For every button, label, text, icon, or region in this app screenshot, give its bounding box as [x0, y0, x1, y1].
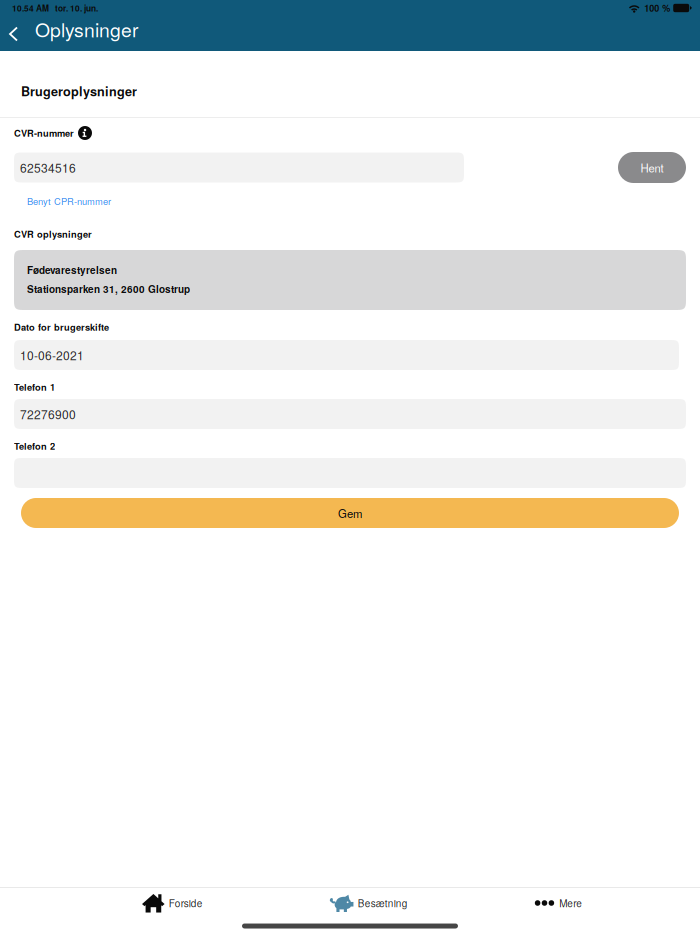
staticText: Forside: [169, 896, 203, 910]
staticText: 10.54 AM: [12, 2, 49, 14]
staticText: 62534516: [20, 159, 76, 176]
button[interactable]: Benyt CPR-nummer: [14, 194, 124, 208]
button[interactable]: Hent: [618, 152, 686, 183]
staticText: 72276900: [20, 405, 76, 423]
staticText: Stationsparken 31, 2600 Glostrup: [27, 282, 190, 296]
staticText: Gem: [338, 505, 362, 521]
staticText: Oplysninger: [35, 15, 138, 43]
staticText: Benyt CPR-nummer: [27, 194, 111, 208]
button[interactable]: Gem: [21, 498, 679, 528]
staticText: Besætning: [358, 896, 408, 910]
staticText: CVR-nummer: [14, 126, 74, 140]
staticText: Telefon 1: [14, 380, 55, 394]
button[interactable]: Besætning: [330, 888, 408, 918]
staticText: tor. 10. jun.: [55, 2, 98, 14]
button[interactable]: Oplysninger om CVR-nummer: [78, 126, 92, 140]
staticText: Fødevarestyrelsen: [27, 263, 117, 277]
staticText: CVR oplysninger: [14, 227, 92, 241]
staticText: 100 %: [644, 1, 670, 14]
button[interactable]: Forside: [142, 888, 203, 918]
button[interactable]: Mere: [535, 888, 582, 918]
staticText: Brugeroplysninger: [21, 82, 137, 100]
staticText: Telefon 2: [14, 439, 55, 453]
staticText: Dato for brugerskifte: [14, 320, 109, 334]
staticText: Hent: [640, 159, 663, 176]
staticText: 10-06-2021: [20, 346, 84, 364]
button[interactable]: Tilbage: [0, 18, 35, 46]
staticText: Mere: [559, 896, 582, 910]
